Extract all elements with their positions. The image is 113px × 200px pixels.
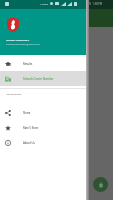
staticText: Rate 5 Stars <box>23 126 39 130</box>
staticText: Communicate <box>6 93 22 96</box>
staticText: createddevelopers@gmail.com <box>6 42 41 45</box>
button[interactable]: About Us <box>0 135 86 150</box>
button[interactable]: Rate 5 Stars <box>0 120 86 135</box>
button[interactable]: Share <box>0 105 86 120</box>
staticText: Results <box>23 62 33 66</box>
button[interactable]: Schools Center Number <box>0 71 86 86</box>
staticText: Created Developers <box>6 38 30 41</box>
staticText: 37% 1:58 PM <box>86 2 103 6</box>
staticText: Share <box>23 111 31 115</box>
button[interactable]: Results <box>0 56 86 71</box>
staticText: 1.06K/s <box>40 2 49 5</box>
button[interactable]: Add <box>93 177 108 192</box>
staticText: Schools Center Number <box>23 77 54 81</box>
staticText: About Us <box>23 141 35 145</box>
